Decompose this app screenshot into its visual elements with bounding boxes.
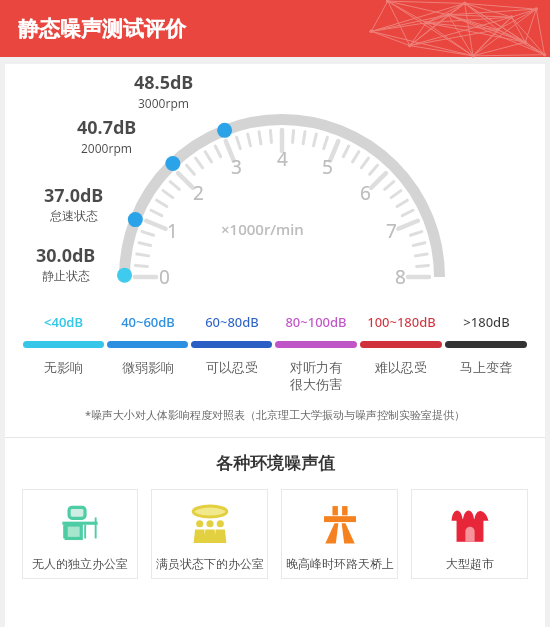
other: Full office <box>189 504 231 546</box>
staticText: 3000rpm <box>138 95 190 111</box>
staticText: 静态噪声测试评价 <box>18 16 186 42</box>
staticText: 马上变聋 <box>460 359 512 375</box>
staticText: 4 <box>277 146 288 172</box>
staticText: 静止状态 <box>42 268 90 283</box>
staticText: 40.7dB <box>77 115 137 140</box>
staticText: 48.5dB <box>134 70 194 95</box>
staticText: 2 <box>193 180 204 206</box>
staticText: 37.0dB <box>44 183 104 208</box>
other: Rush hour overpass <box>319 504 361 546</box>
staticText: 80~100dB <box>285 313 347 331</box>
staticText: *噪声大小对人体影响程度对照表（北京理工大学振动与噪声控制实验室提供） <box>85 407 466 422</box>
button[interactable]: >180dB <box>445 313 527 401</box>
button[interactable]: Full office <box>151 489 268 579</box>
staticText: 无影响 <box>44 359 83 375</box>
staticText: 30.0dB <box>36 243 96 268</box>
staticText: 7 <box>386 218 397 244</box>
staticText: ×1000r/min <box>221 219 304 239</box>
button[interactable]: Rush hour overpass <box>281 489 398 579</box>
staticText: 60~80dB <box>205 313 259 331</box>
button[interactable]: 80~100dB <box>275 313 357 401</box>
staticText: 难以忍受 <box>375 359 427 375</box>
staticText: >180dB <box>463 313 510 331</box>
staticText: 大型超市 <box>446 556 494 571</box>
button[interactable]: 60~80dB <box>191 313 272 401</box>
staticText: 满员状态下的办公室 <box>156 556 264 571</box>
staticText: 2000rpm <box>81 140 133 156</box>
other: Large supermarket <box>449 504 491 546</box>
button[interactable]: Empty private office <box>22 489 138 579</box>
staticText: 无人的独立办公室 <box>32 556 128 571</box>
staticText: 100~180dB <box>367 313 436 331</box>
button[interactable]: 100~180dB <box>360 313 442 401</box>
button[interactable]: <40dB <box>23 313 104 401</box>
button[interactable]: Large supermarket <box>411 489 528 579</box>
button[interactable]: 40~60dB <box>107 313 188 401</box>
staticText: 微弱影响 <box>122 359 174 375</box>
other: Empty private office <box>59 504 101 546</box>
staticText: 6 <box>360 180 371 206</box>
staticText: 可以忍受 <box>206 359 258 375</box>
staticText: 40~60dB <box>121 313 175 331</box>
staticText: 对听力有 很大伤害 <box>290 359 342 393</box>
staticText: 怠速状态 <box>50 208 98 223</box>
staticText: 1 <box>167 218 178 244</box>
staticText: 晚高峰时环路天桥上 <box>286 556 394 571</box>
staticText: 8 <box>395 264 406 290</box>
staticText: 0 <box>159 264 170 290</box>
staticText: 5 <box>322 154 333 180</box>
staticText: 3 <box>231 154 242 180</box>
staticText: 各种环境噪声值 <box>216 453 335 474</box>
staticText: <40dB <box>44 313 83 331</box>
